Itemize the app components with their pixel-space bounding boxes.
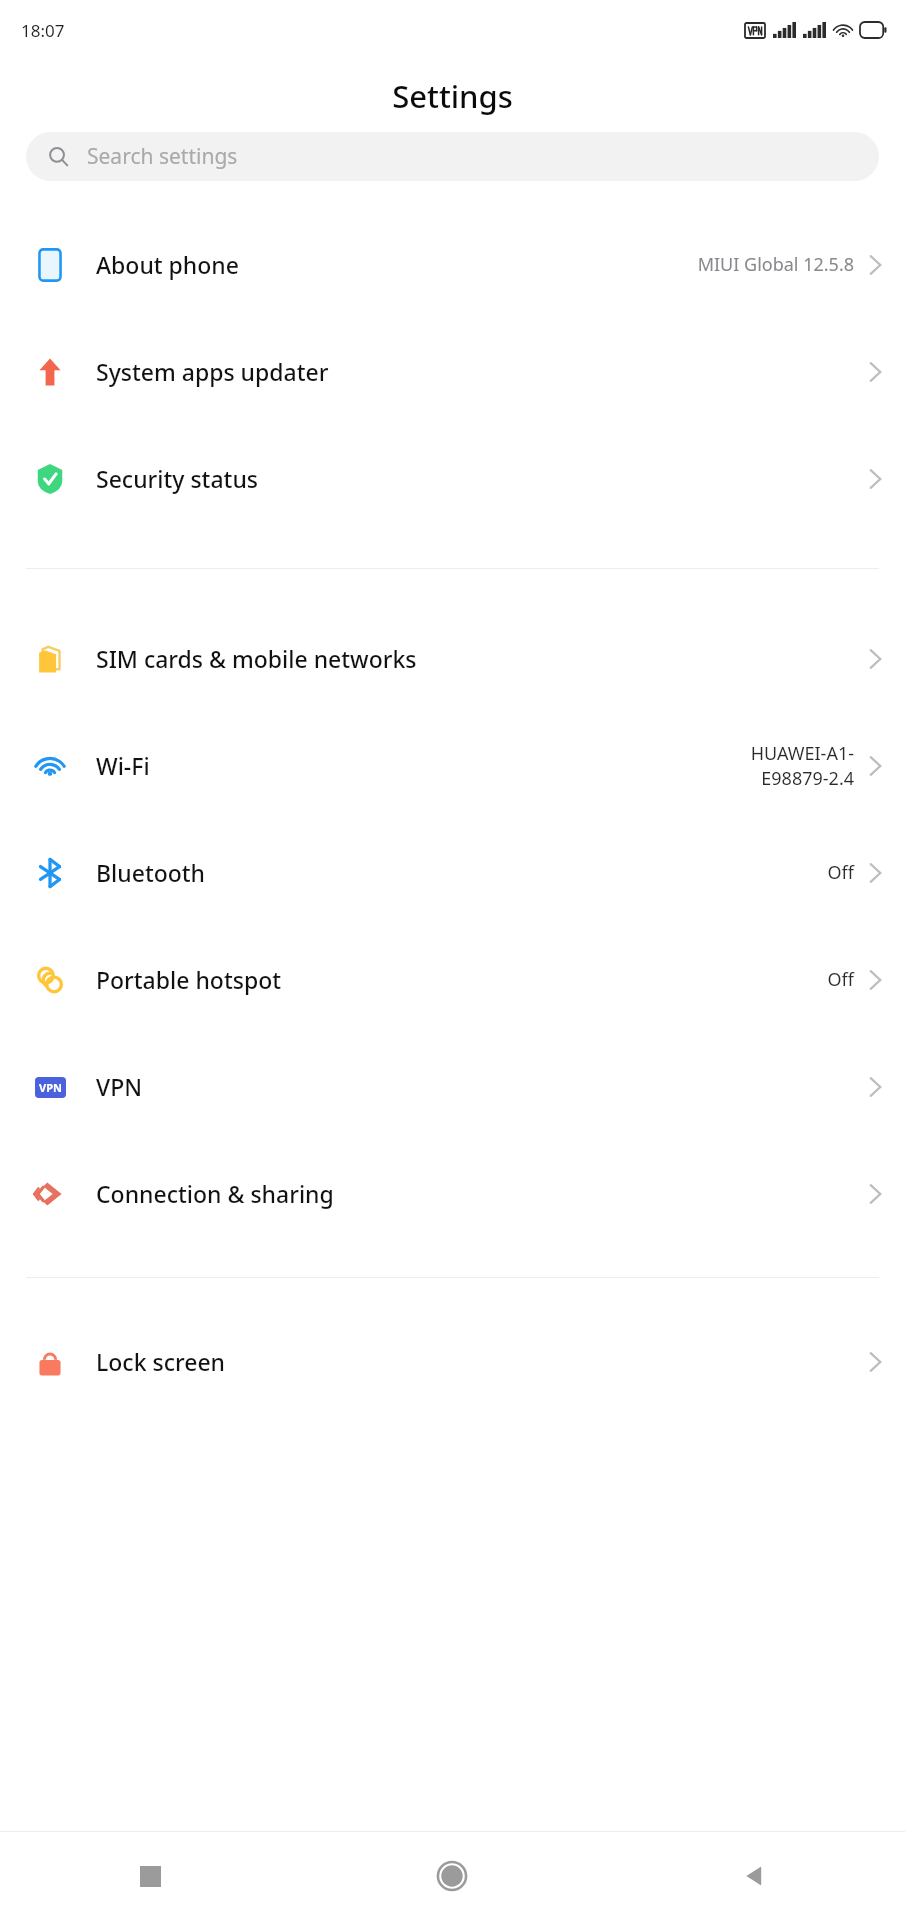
button[interactable]: System apps updater: [0, 318, 905, 425]
staticText: Bluetooth: [96, 857, 206, 888]
button[interactable]: Lock screen: [0, 1308, 905, 1415]
button[interactable]: VPN: [0, 1033, 905, 1140]
staticText: Connection & sharing: [96, 1178, 334, 1209]
staticText: System apps updater: [96, 356, 329, 387]
button[interactable]: Home: [301, 1832, 603, 1920]
staticText: Security status: [96, 463, 258, 494]
button[interactable]: Connection & sharing: [0, 1140, 905, 1247]
button[interactable]: Wi-Fi: [0, 712, 905, 819]
staticText: VPN: [39, 1080, 62, 1095]
button[interactable]: Security status: [0, 425, 905, 532]
button[interactable]: Search settings: [26, 132, 879, 181]
staticText: Wi-Fi: [96, 750, 150, 781]
button[interactable]: SIM cards & mobile networks: [0, 605, 905, 712]
button[interactable]: Recent apps: [0, 1832, 301, 1920]
button[interactable]: About phone: [0, 211, 905, 318]
staticText: Off: [827, 967, 854, 992]
staticText: Portable hotspot: [96, 964, 282, 995]
button[interactable]: Portable hotspot: [0, 926, 905, 1033]
staticText: Lock screen: [96, 1346, 226, 1377]
staticText: MIUI Global 12.5.8: [697, 252, 854, 277]
staticText: Search settings: [87, 142, 238, 171]
staticText: SIM cards & mobile networks: [96, 643, 417, 674]
staticText: About phone: [96, 249, 239, 280]
staticText: 18:07: [21, 19, 65, 42]
button[interactable]: Back: [603, 1832, 905, 1920]
staticText: VPN: [96, 1071, 143, 1102]
button[interactable]: Bluetooth: [0, 819, 905, 926]
staticText: Settings: [392, 75, 513, 117]
staticText: HUAWEI-A1-E98879-2.4: [674, 741, 854, 791]
staticText: Off: [827, 860, 854, 885]
